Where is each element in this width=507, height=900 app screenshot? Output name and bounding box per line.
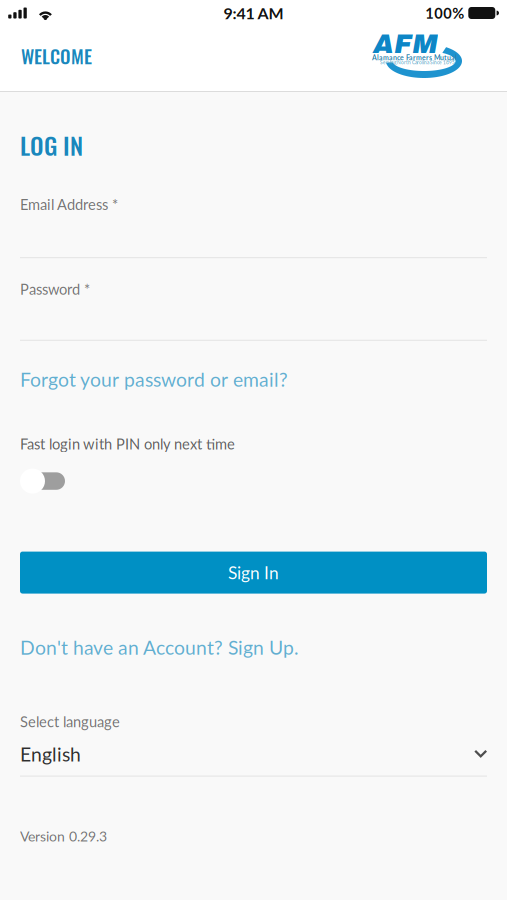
staticText: Serving North Carolina Since 1895 — [380, 59, 455, 65]
staticText: Don't have an Account? Sign Up. — [20, 636, 299, 659]
button[interactable]: Sign In — [20, 552, 487, 594]
staticText: Sign In — [228, 562, 279, 583]
button[interactable]: English — [20, 742, 487, 777]
staticText: Select language — [20, 713, 120, 730]
staticText: Email Address * — [20, 196, 118, 213]
staticText: WELCOME — [21, 42, 92, 70]
button[interactable]: Fast login with PIN only next time — [20, 469, 66, 494]
staticText: 100% — [425, 4, 464, 22]
staticText: English — [20, 742, 81, 766]
staticText: 9:41 AM — [223, 3, 283, 23]
staticText: LOG IN — [20, 127, 83, 163]
staticText: Fast login with PIN only next time — [20, 435, 235, 453]
staticText: Version 0.29.3 — [20, 828, 107, 844]
button[interactable]: Forgot your password or email? — [20, 368, 288, 391]
button[interactable]: Don't have an Account? Sign Up. — [20, 636, 299, 659]
staticText: Forgot your password or email? — [20, 368, 288, 391]
staticText: Alamance Farmers Mutual — [372, 53, 457, 62]
staticText: AFM — [373, 30, 438, 59]
staticText: Password * — [20, 280, 90, 298]
